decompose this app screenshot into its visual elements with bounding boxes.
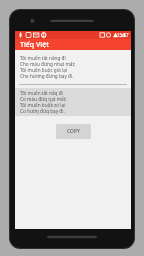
staticText: Cho màu đừng nhạt mất; [20, 61, 76, 67]
button[interactable]: Tiếq Việt app bar [15, 39, 131, 50]
staticText: Tôi muốn buộk zó lại [20, 102, 66, 108]
staticText: Tôi muốn tắt nắng đi [20, 55, 66, 61]
staticText: Cho hương đừng bay đi. [20, 73, 74, 79]
staticText: Tôi muốn buộc gió lại [20, 67, 68, 73]
staticText: 15:57 [117, 32, 129, 38]
staticText: Tôi muốn tắt nắq đi [20, 90, 63, 96]
staticText: COPY [67, 128, 80, 135]
button[interactable]: COPY [56, 124, 91, 139]
staticText: Tiếq Việt [20, 40, 49, 50]
staticText: Co hươŋ đừq bay đi. [20, 108, 65, 114]
staticText: Co màu đừq ŋạt mất; [20, 96, 67, 102]
